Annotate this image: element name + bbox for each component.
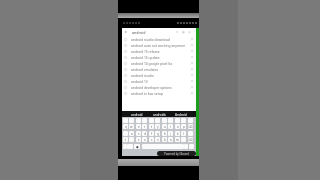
staticText: ●	[136, 145, 139, 149]
staticText: ⌫	[188, 125, 193, 129]
staticText: android	[132, 30, 146, 35]
button[interactable]: android studio	[122, 72, 196, 78]
staticText: ⌫	[188, 138, 193, 142]
button[interactable]: Back	[124, 30, 128, 34]
button[interactable]: l	[181, 131, 186, 136]
button[interactable]: a	[129, 131, 134, 136]
button[interactable]: android tv box setup	[122, 90, 196, 96]
button[interactable]	[184, 144, 188, 149]
staticText: d	[144, 132, 146, 136]
staticText: ✕	[176, 30, 179, 33]
button[interactable]: q	[123, 124, 128, 129]
button[interactable]	[149, 118, 154, 123]
staticText: y	[157, 125, 159, 129]
button[interactable]: r	[142, 124, 147, 129]
staticText: h	[164, 132, 166, 136]
button[interactable]: j	[168, 131, 173, 136]
staticText: ◎	[188, 30, 191, 33]
staticText: android 16 update	[131, 55, 160, 59]
button[interactable]: e	[136, 124, 141, 129]
button[interactable]: ●	[134, 144, 140, 149]
button[interactable]: o	[175, 124, 180, 129]
button[interactable]: android	[131, 113, 143, 117]
button[interactable]: android 13	[122, 78, 196, 84]
button[interactable]	[188, 118, 193, 123]
staticText: ⇧	[124, 138, 127, 142]
button[interactable]: android 15 release	[122, 48, 196, 54]
button[interactable]	[168, 118, 173, 123]
staticText: r	[144, 125, 146, 129]
button[interactable]: h	[162, 131, 167, 136]
button[interactable]: v	[155, 137, 160, 142]
staticText: android 15 release	[131, 49, 160, 53]
button[interactable]	[189, 144, 194, 149]
button[interactable]: Powered by Gboard	[157, 151, 196, 156]
button[interactable]: y	[155, 124, 160, 129]
staticText: j	[170, 132, 171, 136]
button[interactable]: m	[175, 137, 180, 142]
staticText: android tv box setup	[131, 91, 163, 95]
button[interactable]	[181, 118, 186, 123]
button[interactable]	[188, 131, 193, 136]
staticText: i	[170, 125, 171, 129]
button[interactable]	[123, 131, 128, 136]
button[interactable]: u	[162, 124, 167, 129]
button[interactable]: ⌫	[188, 137, 193, 142]
button[interactable]	[136, 118, 141, 123]
button[interactable]: android 16 update	[122, 54, 196, 60]
button[interactable]: g	[155, 131, 160, 136]
button[interactable]: ⌫	[188, 124, 193, 129]
button[interactable]: i	[168, 124, 173, 129]
button[interactable]: s	[136, 131, 141, 136]
button[interactable]: n	[168, 137, 173, 142]
button[interactable]	[127, 144, 133, 149]
staticText: android developer options	[131, 85, 172, 89]
button[interactable]: android studio download	[122, 36, 196, 42]
staticText: android auto not working anymore	[131, 43, 186, 47]
staticText: q	[125, 125, 127, 129]
button[interactable]	[123, 118, 128, 123]
button[interactable]	[155, 118, 160, 123]
staticText: o	[177, 125, 179, 129]
button[interactable]: x	[142, 137, 147, 142]
staticText: v	[157, 138, 159, 142]
button[interactable]	[142, 118, 147, 123]
button[interactable]	[129, 137, 134, 142]
button[interactable]	[162, 118, 167, 123]
staticText: ●	[182, 30, 185, 33]
button[interactable]: k	[175, 131, 180, 136]
button[interactable]: t	[149, 124, 154, 129]
staticText: l	[183, 132, 184, 136]
button[interactable]	[123, 144, 127, 149]
button[interactable]: b	[162, 137, 167, 142]
button[interactable]: Android	[175, 113, 187, 117]
button[interactable]	[181, 137, 186, 142]
button[interactable]: ⇧	[123, 137, 128, 142]
button[interactable]: d	[142, 131, 147, 136]
button[interactable]: c	[149, 137, 154, 142]
button[interactable]: p	[181, 124, 186, 129]
staticText: f	[151, 132, 153, 136]
button[interactable]: android 14 google pixel 6a	[122, 60, 196, 66]
staticText: e	[138, 125, 140, 129]
button[interactable]: android developer options	[122, 84, 196, 90]
button[interactable]	[129, 118, 134, 123]
button[interactable]: android auto not working anymore	[122, 42, 196, 48]
staticText: b	[164, 138, 166, 142]
staticText: z	[138, 138, 140, 142]
staticText: s	[138, 132, 140, 136]
staticText: android studio	[131, 73, 154, 77]
staticText: u	[164, 125, 166, 129]
staticText: k	[177, 132, 179, 136]
button[interactable]: z	[136, 137, 141, 142]
button[interactable]: f	[149, 131, 154, 136]
button[interactable]: androids	[153, 113, 166, 117]
staticText: c	[151, 138, 153, 142]
staticText: Powered by Gboard	[164, 152, 189, 156]
button[interactable]: w	[129, 124, 134, 129]
staticText: a	[131, 132, 133, 136]
staticText: x	[144, 138, 146, 142]
button[interactable]	[175, 118, 180, 123]
button[interactable]: android emulator	[122, 66, 196, 72]
